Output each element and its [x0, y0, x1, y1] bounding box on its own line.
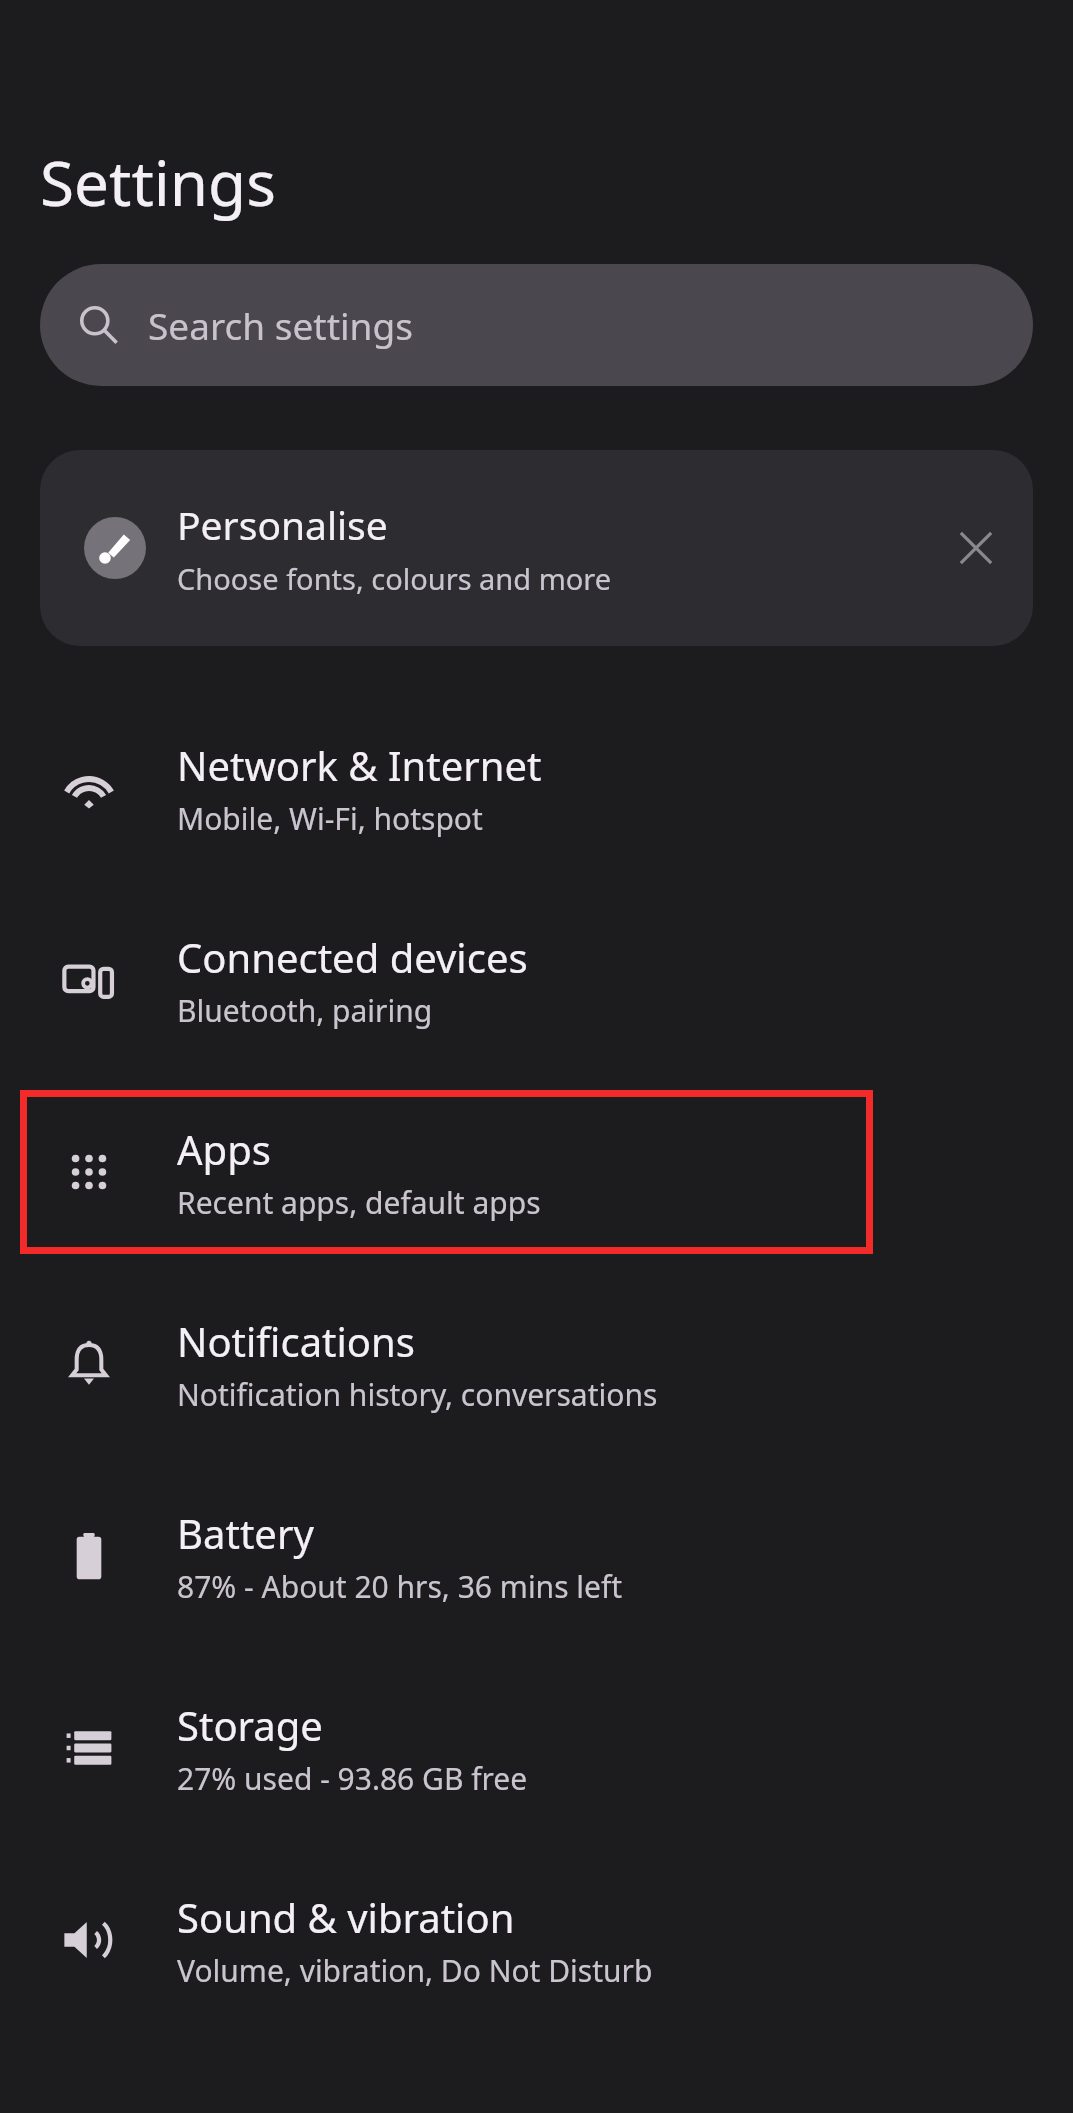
staticText: Search settings — [148, 300, 413, 350]
button[interactable]: Search settings — [40, 264, 1033, 386]
staticText: Volume, vibration, Do Not Disturb — [177, 1950, 653, 1991]
button[interactable]: Battery — [0, 1460, 1073, 1652]
staticText: Network & Internet — [177, 738, 542, 792]
staticText: Connected devices — [177, 930, 528, 984]
button[interactable]: Dismiss — [933, 505, 1019, 591]
staticText: Choose fonts, colours and more — [177, 559, 612, 598]
button[interactable]: Storage — [0, 1652, 1073, 1844]
staticText: Recent apps, default apps — [177, 1182, 541, 1223]
button[interactable]: Sound & vibration — [0, 1844, 1073, 2036]
button[interactable]: Connected devices — [0, 884, 1073, 1076]
button[interactable]: Network & Internet — [0, 692, 1073, 884]
button[interactable]: Apps — [0, 1076, 1073, 1268]
staticText: Bluetooth, pairing — [177, 990, 433, 1031]
staticText: Notification history, conversations — [177, 1374, 658, 1415]
staticText: 87% - About 20 hrs, 36 mins left — [177, 1566, 623, 1607]
staticText: Personalise — [177, 498, 388, 551]
staticText: Sound & vibration — [177, 1890, 515, 1944]
staticText: Storage — [177, 1698, 323, 1752]
staticText: Apps — [177, 1122, 271, 1176]
staticText: Notifications — [177, 1314, 415, 1368]
button[interactable]: Personalise — [40, 450, 1033, 646]
staticText: Mobile, Wi-Fi, hotspot — [177, 798, 483, 839]
staticText: 27% used - 93.86 GB free — [177, 1758, 528, 1799]
button[interactable]: Notifications — [0, 1268, 1073, 1460]
staticText: Settings — [40, 140, 276, 224]
staticText: Battery — [177, 1506, 314, 1560]
